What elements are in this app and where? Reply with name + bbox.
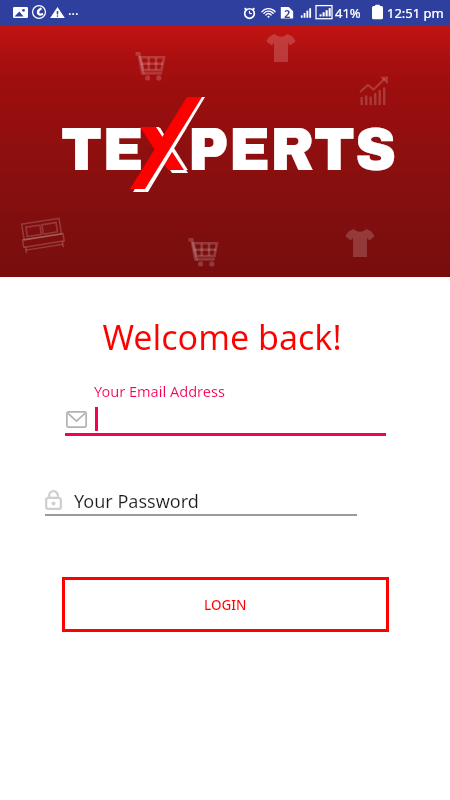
staticText: 2 xyxy=(284,6,291,21)
staticText: Your Password xyxy=(74,489,199,514)
button[interactable]: Your Password input field xyxy=(45,484,357,516)
staticText: 12:51 pm xyxy=(387,4,444,22)
staticText: LOGIN xyxy=(204,596,247,614)
staticText: Your Email Address xyxy=(94,381,225,401)
button[interactable]: LOGIN xyxy=(62,577,389,632)
staticText: TEXPERTS xyxy=(61,117,397,183)
button[interactable]: Your Email Address input field xyxy=(65,401,386,436)
staticText: Welcome back! xyxy=(0,314,447,360)
staticText: 41% xyxy=(335,4,361,22)
staticText: ... xyxy=(68,1,79,19)
